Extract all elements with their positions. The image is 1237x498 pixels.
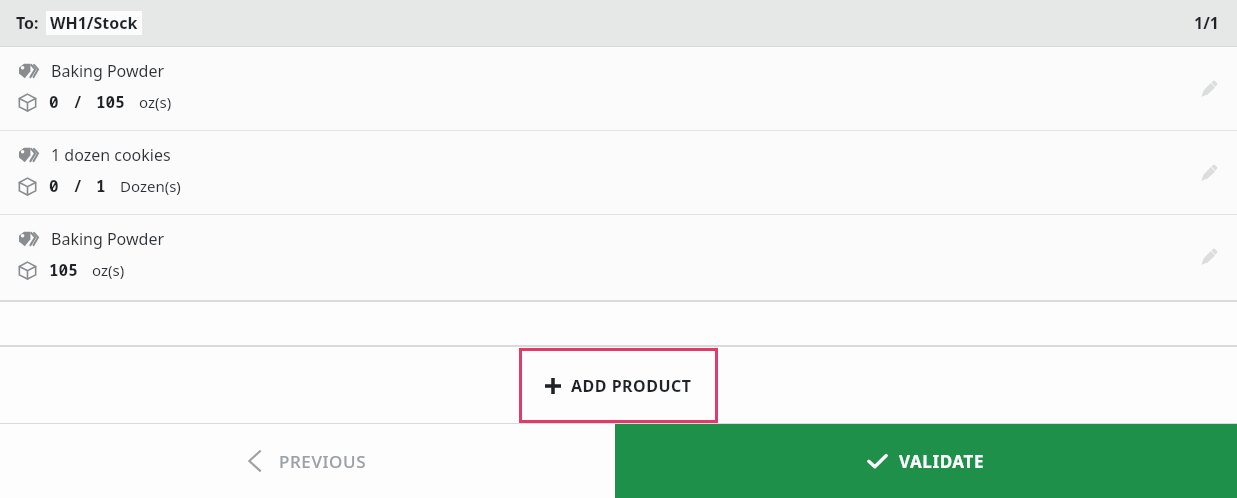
button[interactable]: Baking Powder [0, 215, 1237, 298]
button[interactable]: ADD PRODUCT [519, 348, 718, 423]
staticText: 1 [96, 175, 106, 197]
staticText: 0 [49, 91, 59, 113]
staticText: Baking Powder [51, 228, 165, 250]
staticText: 1/1 [1194, 12, 1219, 34]
button[interactable]: Baking Powder [0, 47, 1237, 130]
staticText: Baking Powder [51, 60, 165, 82]
button[interactable]: Edit line [1189, 153, 1229, 193]
staticText: oz(s) [92, 260, 125, 280]
staticText: 1 dozen cookies [51, 144, 171, 166]
staticText: PREVIOUS [279, 450, 367, 473]
staticText: / [73, 91, 83, 113]
staticText: 0 [49, 175, 59, 197]
button[interactable]: VALIDATE [615, 424, 1237, 498]
staticText: 105 [96, 91, 125, 113]
staticText: ADD PRODUCT [571, 375, 692, 397]
staticText: oz(s) [139, 92, 172, 112]
staticText: Dozen(s) [120, 176, 181, 196]
staticText: To: [16, 12, 39, 34]
button[interactable]: Edit line [1189, 237, 1229, 277]
staticText: VALIDATE [899, 450, 985, 473]
button[interactable]: PREVIOUS [0, 424, 615, 498]
staticText: / [73, 175, 83, 197]
button[interactable]: 1 dozen cookies [0, 131, 1237, 214]
staticText: 105 [49, 259, 78, 281]
button[interactable]: Edit line [1189, 69, 1229, 109]
staticText: WH1/Stock [50, 12, 138, 34]
